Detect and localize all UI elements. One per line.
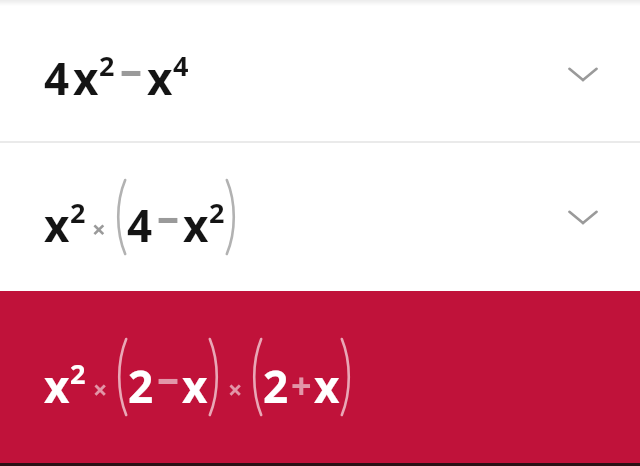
staticText: 2 (70, 194, 86, 231)
staticText: 4 (173, 47, 189, 84)
staticText: x (182, 356, 208, 416)
button[interactable]: 4 (0, 6, 640, 141)
other: Expand step (566, 207, 600, 227)
staticText: – (157, 186, 179, 246)
staticText: x (73, 48, 99, 108)
staticText: x (44, 195, 70, 255)
staticText: 4 (44, 48, 70, 108)
staticText: 2 (263, 356, 289, 416)
staticText: x (147, 48, 173, 108)
staticText: × (228, 372, 243, 406)
staticText: 4 (127, 195, 153, 255)
staticText: 2 (99, 47, 115, 84)
staticText: – (120, 39, 142, 99)
staticText: – (157, 347, 179, 407)
staticText: 2 (70, 355, 86, 392)
staticText: x (44, 356, 70, 416)
staticText: + (291, 361, 312, 410)
staticText: × (92, 212, 106, 245)
button[interactable]: x (0, 291, 640, 463)
staticText: × (93, 372, 108, 406)
other: Expand step (566, 64, 600, 84)
staticText: 2 (209, 194, 225, 231)
staticText: x (183, 195, 209, 255)
staticText: x (314, 356, 340, 416)
staticText: 2 (128, 356, 154, 416)
button[interactable]: x (0, 143, 640, 291)
